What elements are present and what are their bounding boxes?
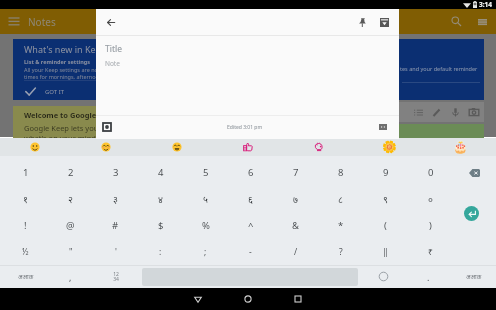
button[interactable]: - <box>228 239 273 265</box>
button[interactable]: 0 <box>408 159 453 186</box>
button[interactable]: Emoji suggestion <box>0 138 70 156</box>
staticText: 5 <box>203 166 209 179</box>
button[interactable]: Emoji suggestion <box>354 138 425 156</box>
button[interactable]: ½ <box>3 239 48 265</box>
button[interactable]: २ <box>48 186 93 212</box>
staticText: what's on your mind. <box>24 133 98 143</box>
button[interactable]: Emoji <box>361 265 406 288</box>
button[interactable]: 12 34 <box>93 265 138 288</box>
button[interactable]: Menu <box>0 9 28 34</box>
button[interactable]: ८ <box>318 186 363 212</box>
button[interactable]: Recents <box>273 288 323 310</box>
button[interactable]: ९ <box>363 186 408 212</box>
button[interactable]: 1 <box>3 159 48 186</box>
staticText: ½ <box>22 246 29 258</box>
button[interactable]: 4 <box>138 159 183 186</box>
button[interactable]: 6 <box>228 159 273 186</box>
button[interactable]: ? <box>318 239 363 265</box>
button[interactable]: @ <box>48 212 93 239</box>
button[interactable]: 9 <box>363 159 408 186</box>
button[interactable]: Back <box>96 9 125 36</box>
button[interactable]: ० <box>408 186 453 212</box>
staticText: ₹ <box>428 246 433 258</box>
staticText: अआक <box>466 273 482 281</box>
staticText: , <box>69 271 72 283</box>
staticText: ? <box>339 246 343 258</box>
button[interactable]: Enter <box>464 206 479 221</box>
button[interactable]: " <box>48 239 93 265</box>
button[interactable]: ( <box>363 212 408 239</box>
button[interactable]: ^ <box>228 212 273 239</box>
staticText: nd. You can always search <box>396 135 482 154</box>
button[interactable]: ५ <box>183 186 228 212</box>
staticText: ५ <box>203 193 208 206</box>
button[interactable]: 7 <box>273 159 318 186</box>
button[interactable]: ₹ <box>408 239 453 265</box>
button[interactable]: . <box>406 265 451 288</box>
button[interactable]: Search <box>443 9 469 34</box>
staticText: times for mornings, afternoons a <box>24 73 110 80</box>
button[interactable]: ; <box>183 239 228 265</box>
staticText: . <box>427 271 430 283</box>
button[interactable]: अआक <box>3 265 48 288</box>
button[interactable]: / <box>273 239 318 265</box>
staticText: ९ <box>383 193 388 206</box>
button[interactable]: Emoji suggestion <box>283 138 354 156</box>
button[interactable]: 5 <box>183 159 228 186</box>
staticText: ! <box>24 219 27 232</box>
staticText: # <box>112 219 119 232</box>
button[interactable]: $ <box>138 212 183 239</box>
button[interactable]: Emoji suggestion <box>70 138 141 156</box>
button[interactable]: अआक <box>451 265 496 288</box>
staticText: & <box>292 219 299 232</box>
staticText: What's new in Keep <box>24 43 107 55</box>
staticText: / <box>294 246 298 258</box>
staticText: All your Keep settings are now a <box>24 66 107 73</box>
button[interactable]: ३ <box>93 186 138 212</box>
button[interactable]: # <box>93 212 138 239</box>
staticText: ६ <box>248 193 253 206</box>
staticText: ४ <box>158 193 163 206</box>
button[interactable]: 8 <box>318 159 363 186</box>
staticText: ३ <box>113 193 118 206</box>
staticText: 2 <box>68 166 74 179</box>
button[interactable]: Pin <box>351 9 373 36</box>
button[interactable]: Backspace <box>453 159 496 186</box>
staticText: % <box>202 219 210 232</box>
button[interactable]: ४ <box>138 186 183 212</box>
button[interactable]: : <box>138 239 183 265</box>
button[interactable]: More options <box>372 115 394 139</box>
button[interactable]: ! <box>3 212 48 239</box>
button[interactable]: ७ <box>273 186 318 212</box>
button[interactable]: Add <box>96 115 118 139</box>
staticText: 7 <box>293 166 299 179</box>
button[interactable]: ६ <box>228 186 273 212</box>
staticText: 8 <box>338 166 344 179</box>
button[interactable]: , <box>48 265 93 288</box>
button[interactable]: % <box>183 212 228 239</box>
button[interactable]: View options <box>469 9 495 34</box>
button[interactable]: Emoji suggestion <box>212 138 283 156</box>
staticText: 🎂 <box>453 140 468 154</box>
button[interactable]: ) <box>408 212 453 239</box>
button[interactable]: Back <box>173 288 223 310</box>
button[interactable]: & <box>273 212 318 239</box>
button[interactable]: 3 <box>93 159 138 186</box>
staticText: 9 <box>383 166 389 179</box>
button[interactable]: Home <box>223 288 273 310</box>
button[interactable]: ‖ <box>363 239 408 265</box>
button[interactable]: Enter <box>453 186 496 212</box>
staticText: 0 <box>428 166 434 179</box>
staticText: Welcome to Google Keep <box>24 110 117 120</box>
button[interactable]: Emoji suggestion <box>141 138 212 156</box>
staticText: 4 <box>158 166 164 179</box>
button[interactable]: * <box>318 212 363 239</box>
staticText: GOT IT <box>45 88 65 96</box>
button[interactable]: Archive <box>373 9 395 36</box>
button[interactable]: १ <box>3 186 48 212</box>
button[interactable]: Emoji suggestion <box>425 138 496 156</box>
button[interactable]: 2 <box>48 159 93 186</box>
staticText: Google Keep lets you quickly <box>24 123 125 133</box>
